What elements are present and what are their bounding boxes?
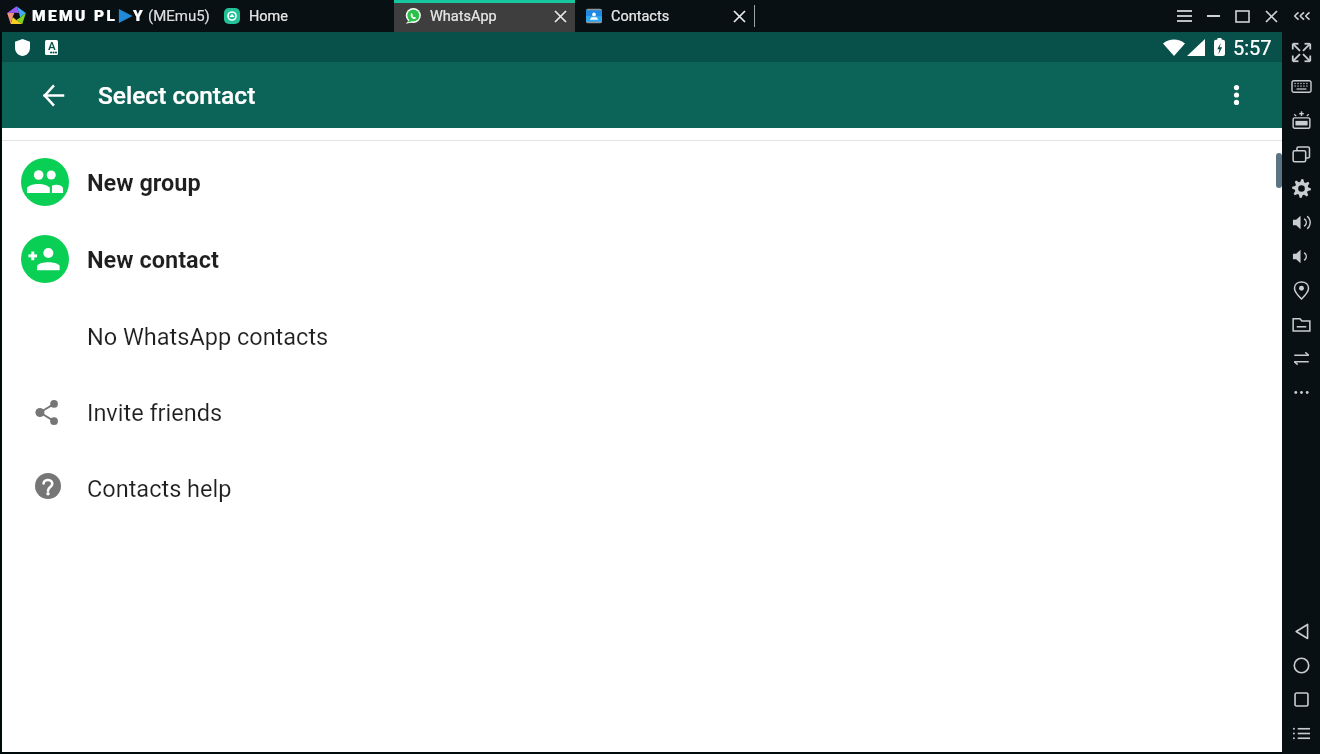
button[interactable]: Rotate (1282, 341, 1320, 375)
staticText: Invite friends (87, 399, 223, 427)
staticText: No WhatsApp contacts (87, 323, 329, 351)
button[interactable]: Close WhatsApp tab (548, 4, 572, 28)
button[interactable]: New contact (2, 220, 1282, 297)
staticText: (MEmu5) (148, 7, 210, 25)
staticText: New group (87, 169, 201, 197)
button[interactable]: Keyboard (1282, 69, 1320, 103)
button[interactable]: Close window (1257, 0, 1286, 32)
button[interactable]: More options (1214, 73, 1258, 117)
button[interactable]: Volume up (1282, 205, 1320, 239)
button[interactable]: Back (1282, 614, 1320, 648)
staticText: Y (133, 7, 146, 25)
button[interactable]: Install APK (1282, 103, 1320, 137)
button[interactable]: Navigate up (31, 73, 75, 117)
staticText: MEMU PL (32, 7, 118, 25)
staticText: Contacts help (87, 475, 232, 503)
button[interactable]: Maximize (1228, 0, 1257, 32)
button[interactable]: Settings (1282, 171, 1320, 205)
button[interactable]: Contacts (575, 0, 754, 32)
button[interactable]: Recents (1282, 682, 1320, 716)
staticText: Select contact (98, 81, 256, 110)
button[interactable]: Location (1282, 273, 1320, 307)
button[interactable]: Multi window (1282, 137, 1320, 171)
staticText: A (48, 40, 56, 52)
button[interactable]: Close Contacts tab (727, 4, 751, 28)
button[interactable]: Collapse toolbar (1286, 0, 1320, 32)
button[interactable]: Contacts help (2, 450, 1282, 526)
button[interactable]: Fullscreen (1282, 35, 1320, 69)
staticText: WhatsApp (430, 8, 497, 25)
button[interactable]: Menu (1170, 0, 1199, 32)
button[interactable]: Shared folder (1282, 307, 1320, 341)
button[interactable]: WhatsApp (394, 0, 575, 32)
button[interactable]: Home (1282, 648, 1320, 682)
staticText: Contacts (611, 8, 670, 25)
button[interactable]: More (1282, 375, 1320, 409)
staticText: New contact (87, 246, 219, 274)
button[interactable]: Home (213, 0, 393, 32)
staticText: 5:57 (1233, 36, 1272, 59)
button[interactable]: Invite friends (2, 374, 1282, 450)
button[interactable]: Minimize (1199, 0, 1228, 32)
button[interactable]: New group (2, 143, 1282, 220)
button[interactable]: Volume down (1282, 239, 1320, 273)
button[interactable]: Menu (1282, 716, 1320, 750)
button[interactable]: No WhatsApp contacts (2, 297, 1282, 374)
staticText: Home (249, 8, 289, 25)
